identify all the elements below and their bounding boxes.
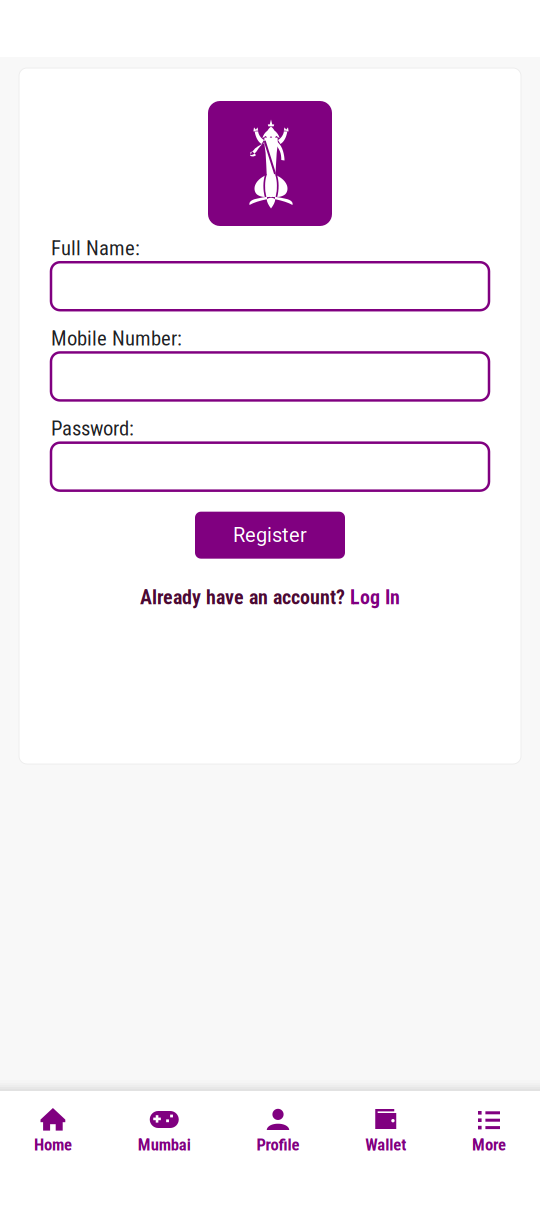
staticText: Wallet xyxy=(365,1135,406,1154)
staticText: More xyxy=(472,1135,506,1154)
staticText: Home xyxy=(34,1135,72,1154)
button[interactable]: Password: xyxy=(51,443,489,491)
button[interactable]: Mumbai xyxy=(138,1108,191,1154)
staticText: Full Name: xyxy=(51,236,140,260)
button[interactable]: More xyxy=(472,1108,506,1154)
staticText: Mobile Number: xyxy=(51,326,182,350)
staticText: Register xyxy=(233,523,307,547)
button[interactable]: Wallet xyxy=(365,1108,406,1154)
staticText: Log In xyxy=(350,586,400,609)
staticText: Profile xyxy=(256,1135,299,1154)
button[interactable]: Full Name: xyxy=(51,262,489,310)
staticText: Mumbai xyxy=(138,1135,191,1154)
button[interactable]: Already have an account? xyxy=(140,586,400,609)
button[interactable]: Mobile Number: xyxy=(51,352,489,400)
button[interactable]: Home xyxy=(34,1108,72,1154)
staticText: Password: xyxy=(51,416,134,441)
button[interactable]: Profile xyxy=(256,1108,299,1154)
staticText: Already have an account? xyxy=(140,586,350,609)
button[interactable]: Register xyxy=(195,512,345,559)
